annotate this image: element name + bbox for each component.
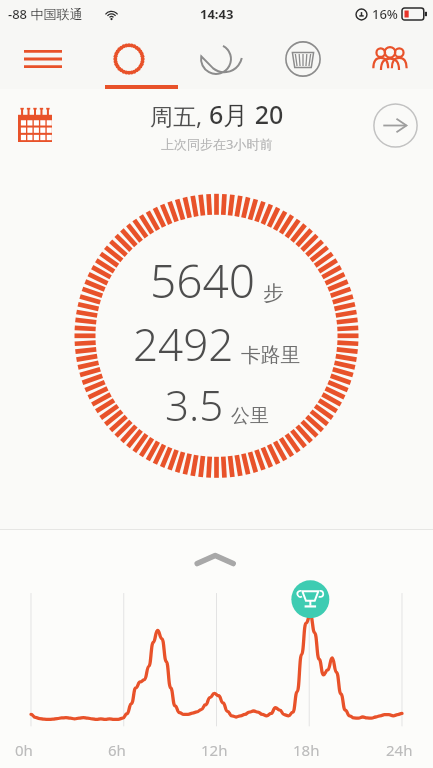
button[interactable]: Friends: [346, 28, 433, 89]
staticText: 步: [263, 280, 284, 306]
staticText: 5640: [150, 249, 256, 312]
button[interactable]: Weight: [259, 28, 346, 89]
staticText: 6月 20: [209, 97, 284, 131]
staticText: 18h: [293, 740, 320, 760]
button[interactable]: Sleep: [172, 28, 259, 89]
button[interactable]: Next day: [370, 100, 420, 150]
staticText: 3.5: [165, 376, 224, 433]
button[interactable]: Activity: [86, 28, 172, 89]
staticText: -88 中国联通: [8, 5, 83, 23]
staticText: 0h: [15, 740, 33, 760]
staticText: 2492: [133, 314, 234, 374]
staticText: 24h: [386, 740, 413, 760]
staticText: 12h: [201, 740, 228, 760]
staticText: 6h: [108, 740, 126, 760]
staticText: 卡路里: [241, 343, 301, 368]
staticText: 上次同步在3小时前: [161, 135, 273, 153]
button[interactable]: Calendar: [13, 103, 57, 147]
staticText: 周五,: [150, 100, 203, 131]
staticText: 16%: [372, 5, 398, 23]
staticText: 14:43: [200, 5, 234, 23]
button[interactable]: Menu: [0, 28, 86, 89]
staticText: 公里: [231, 404, 269, 428]
